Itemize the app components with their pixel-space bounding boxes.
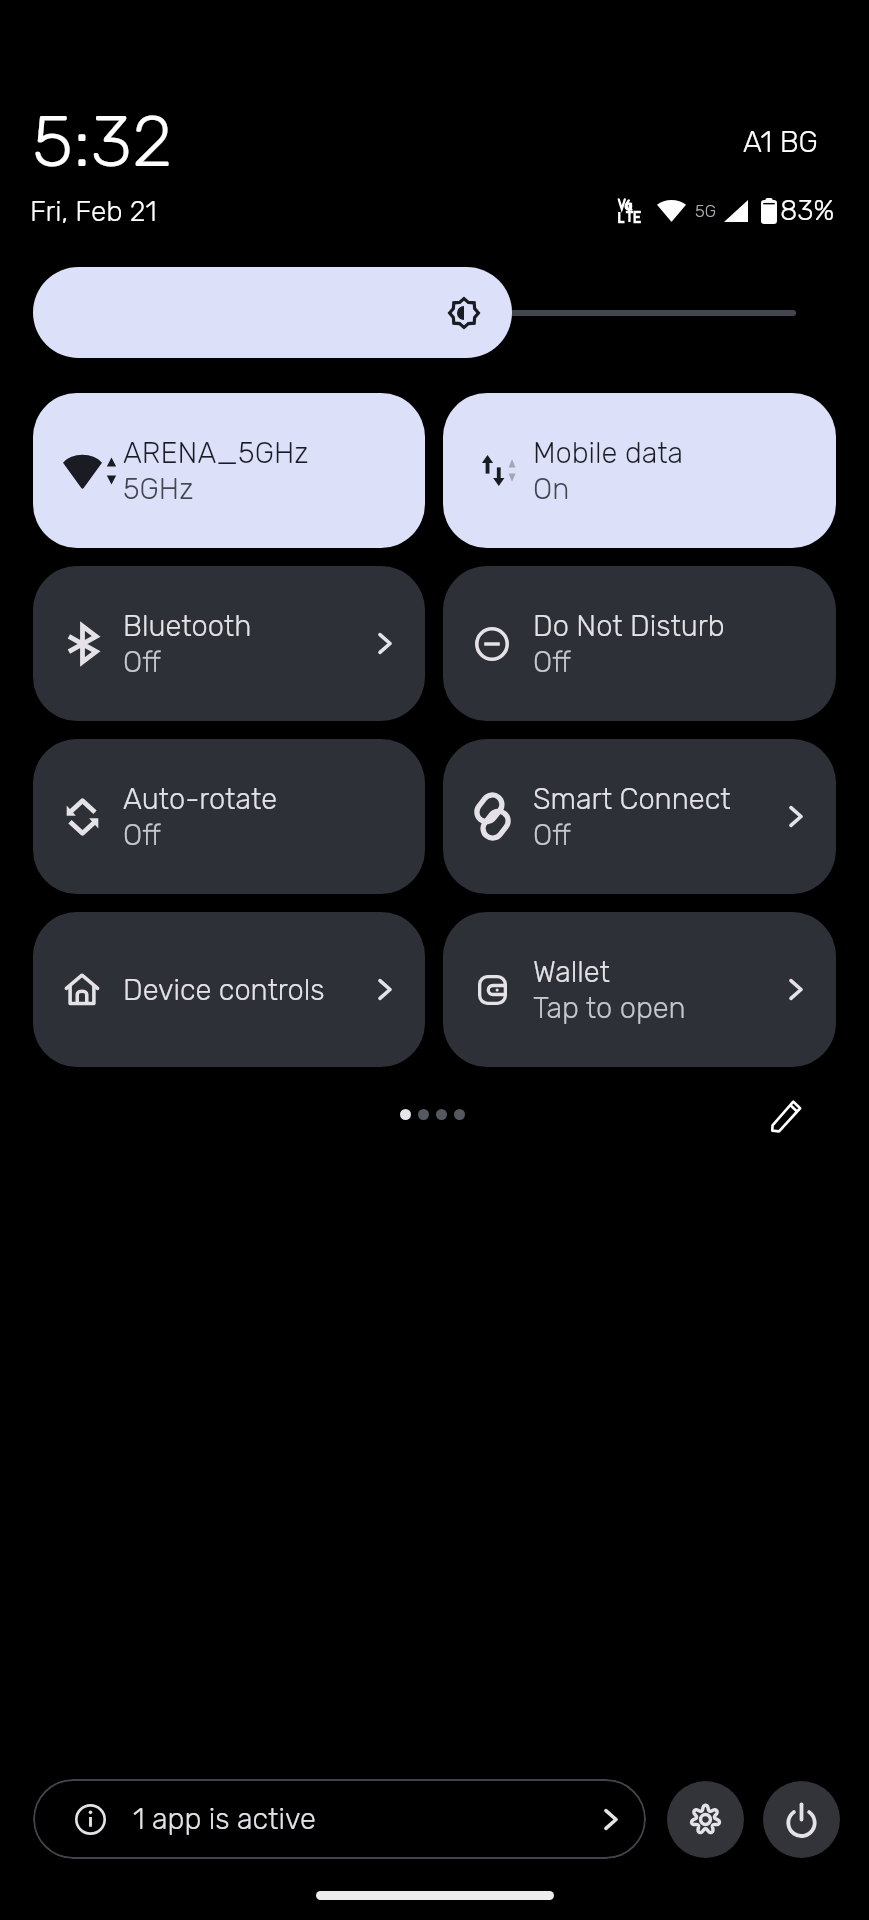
staticText: ARENA_5GHz xyxy=(123,436,309,470)
button[interactable]: 1 app is active xyxy=(33,1779,646,1859)
button[interactable]: Page 1 xyxy=(400,1109,411,1120)
staticText: 83% xyxy=(780,194,835,227)
staticText: Mobile data xyxy=(533,436,684,470)
button[interactable]: Auto-rotate xyxy=(33,739,425,894)
button[interactable]: Device controls xyxy=(33,912,425,1067)
staticText: Bluetooth xyxy=(123,609,252,643)
button[interactable]: Edit tiles xyxy=(762,1091,810,1139)
button[interactable]: Do Not Disturb xyxy=(443,566,836,721)
staticText: 1 app is active xyxy=(133,1802,316,1836)
staticText: On xyxy=(533,472,570,506)
button[interactable]: Page 4 xyxy=(454,1109,465,1120)
staticText: Off xyxy=(533,645,571,679)
staticText: 5G xyxy=(695,201,717,221)
button[interactable]: ARENA_5GHz xyxy=(33,393,425,548)
staticText: 5GHz xyxy=(123,472,194,506)
staticText: Auto-rotate xyxy=(123,782,278,816)
staticText: 5:32 xyxy=(32,99,173,184)
button[interactable]: Page 3 xyxy=(436,1109,447,1120)
staticText: Do Not Disturb xyxy=(533,609,725,643)
button[interactable]: Wallet xyxy=(443,912,836,1067)
staticText: Off xyxy=(533,818,571,852)
button[interactable]: Settings xyxy=(667,1781,744,1858)
staticText: Tap to open xyxy=(533,991,686,1025)
staticText: Off xyxy=(123,645,161,679)
button[interactable]: Bluetooth xyxy=(33,566,425,721)
staticText: A1 BG xyxy=(743,125,818,159)
staticText: Smart Connect xyxy=(533,782,731,816)
button[interactable]: Mobile data xyxy=(443,393,836,548)
staticText: Off xyxy=(123,818,161,852)
staticText: Fri, Feb 21 xyxy=(30,195,157,228)
button[interactable]: Smart Connect xyxy=(443,739,836,894)
button[interactable]: Power xyxy=(763,1781,840,1858)
staticText: Device controls xyxy=(123,973,325,1007)
button[interactable]: Brightness xyxy=(33,267,512,358)
staticText: Wallet xyxy=(533,955,610,989)
button[interactable]: Page 2 xyxy=(418,1109,429,1120)
